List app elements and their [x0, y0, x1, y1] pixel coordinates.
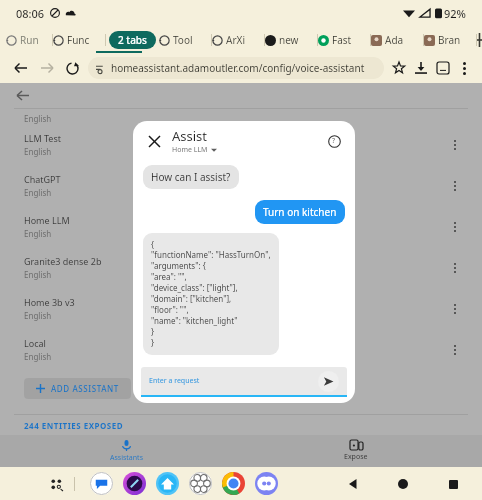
button[interactable]: More options [444, 257, 466, 279]
staticText: English [24, 310, 52, 321]
button[interactable]: Run [6, 33, 52, 47]
staticText: Granite3 dense 2b [24, 255, 102, 267]
button[interactable]: More options [444, 216, 466, 238]
staticText: { "functionName": "HassTurnOn", "argumen… [151, 239, 271, 349]
staticText: English [24, 113, 52, 124]
button[interactable]: Help [324, 131, 344, 151]
button[interactable]: 244 ENTITIES EXPOSED [24, 420, 124, 431]
staticText: How can I assist? [151, 170, 231, 184]
staticText: Home 3b v3 [24, 296, 75, 308]
staticText: English [24, 146, 52, 157]
staticText: Local [24, 337, 46, 349]
staticText: LLM Test [24, 132, 61, 144]
button[interactable]: Fast [318, 33, 370, 47]
staticText: Fast [332, 33, 352, 47]
button[interactable]: Back [10, 83, 34, 107]
button[interactable]: Messages [89, 471, 114, 496]
staticText: ? [332, 136, 336, 146]
staticText: Turn on kitchen [263, 205, 337, 219]
button[interactable]: More options [444, 175, 466, 197]
button[interactable]: ChatGPT [188, 471, 213, 496]
button[interactable]: homeassistant.adamoutler.com/config/voic… [88, 57, 384, 79]
button[interactable]: Chrome [221, 471, 246, 496]
staticText: ArXi [226, 33, 245, 47]
button[interactable]: Translate [432, 57, 454, 79]
button[interactable]: 2 tabs [109, 31, 156, 49]
button[interactable]: Assistants [96, 435, 156, 467]
button[interactable]: ChatGPT [14, 165, 468, 206]
staticText: English [24, 269, 52, 280]
button[interactable]: Home 3b v3 [14, 288, 468, 329]
staticText: Bran [438, 33, 461, 47]
staticText: ChatGPT [24, 173, 61, 185]
staticText: new [279, 33, 299, 47]
button[interactable]: Send [318, 371, 339, 392]
staticText: homeassistant.adamoutler.com/config/voic… [111, 61, 365, 75]
staticText: English [24, 187, 52, 198]
staticText: 92% [444, 6, 466, 21]
button[interactable]: More options [454, 58, 474, 78]
staticText: ADD ASSISTANT [51, 383, 119, 394]
button[interactable]: Reload [60, 56, 84, 80]
staticText: Assist [172, 127, 208, 145]
staticText: Home LLM [24, 214, 70, 226]
staticText: Func [67, 33, 90, 47]
button[interactable]: Expose [326, 435, 386, 467]
button[interactable]: Local [14, 329, 468, 370]
button[interactable]: Forward [34, 55, 60, 81]
button[interactable]: App drawer [46, 474, 66, 494]
button[interactable]: Ada [371, 33, 423, 47]
button[interactable]: Tool [159, 33, 211, 47]
button[interactable]: new [265, 33, 317, 47]
staticText: Ada [385, 33, 404, 47]
staticText: 08:06 [16, 6, 45, 21]
button[interactable]: Bran [424, 33, 476, 47]
button[interactable]: More options [444, 134, 466, 156]
button[interactable]: Perplexity [122, 471, 147, 496]
staticText: English [24, 351, 52, 362]
staticText: Run [20, 33, 39, 47]
staticText: English [24, 228, 52, 239]
button[interactable]: More options [444, 298, 466, 320]
button[interactable]: Home Assistant [155, 471, 180, 496]
button[interactable]: Close [144, 131, 164, 151]
button[interactable]: ArXi [212, 33, 264, 47]
button[interactable]: Recents [440, 471, 466, 497]
staticText: Home LLM [172, 145, 208, 155]
button[interactable]: LLM Test [14, 124, 468, 165]
button[interactable]: Bookmark [388, 57, 410, 79]
button[interactable]: Discord [254, 471, 279, 496]
staticText: Enter a request [149, 376, 200, 386]
button[interactable]: Download [410, 57, 432, 79]
button[interactable]: ADD ASSISTANT [24, 378, 131, 399]
button[interactable]: Home LLM [14, 206, 468, 247]
staticText: Expose [344, 452, 368, 462]
staticText: Assistants [110, 453, 143, 463]
button[interactable]: Func [53, 33, 105, 47]
button[interactable]: Home [390, 471, 416, 497]
button[interactable]: Back [8, 55, 34, 81]
staticText: 2 tabs [118, 33, 147, 47]
button[interactable]: Back [340, 471, 366, 497]
staticText: Tool [173, 33, 193, 47]
button[interactable]: Enter a request [141, 367, 347, 395]
button[interactable]: Home LLM [172, 145, 217, 155]
button[interactable]: Granite3 dense 2b [14, 247, 468, 288]
button[interactable]: New tab [477, 26, 482, 53]
button[interactable]: More options [444, 339, 466, 361]
